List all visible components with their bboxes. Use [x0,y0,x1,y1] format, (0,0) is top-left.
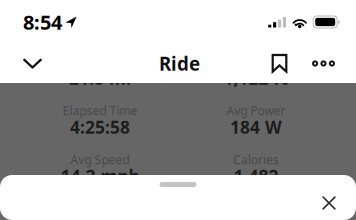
staticText: 14.2 mph [60,164,139,187]
staticText: Calories [233,151,279,167]
staticText: 1,482 [233,164,278,187]
staticText: 21.8 mi [69,66,131,89]
button[interactable]: More options [299,44,348,83]
staticText: Avg Speed [70,151,129,167]
staticText: Ride [159,51,200,76]
staticText: Avg Power [226,102,285,118]
button[interactable]: Bookmark [260,44,299,83]
staticText: Elapsed Time [62,102,137,118]
staticText: 4:25:58 [70,115,130,138]
button[interactable]: Collapse [11,44,54,83]
staticText: 1,122 ft [223,66,288,89]
button[interactable]: Close [313,189,345,217]
staticText: 184 W [230,115,282,138]
staticText: 8:54 [23,9,62,35]
staticText: Elevation [230,53,281,69]
